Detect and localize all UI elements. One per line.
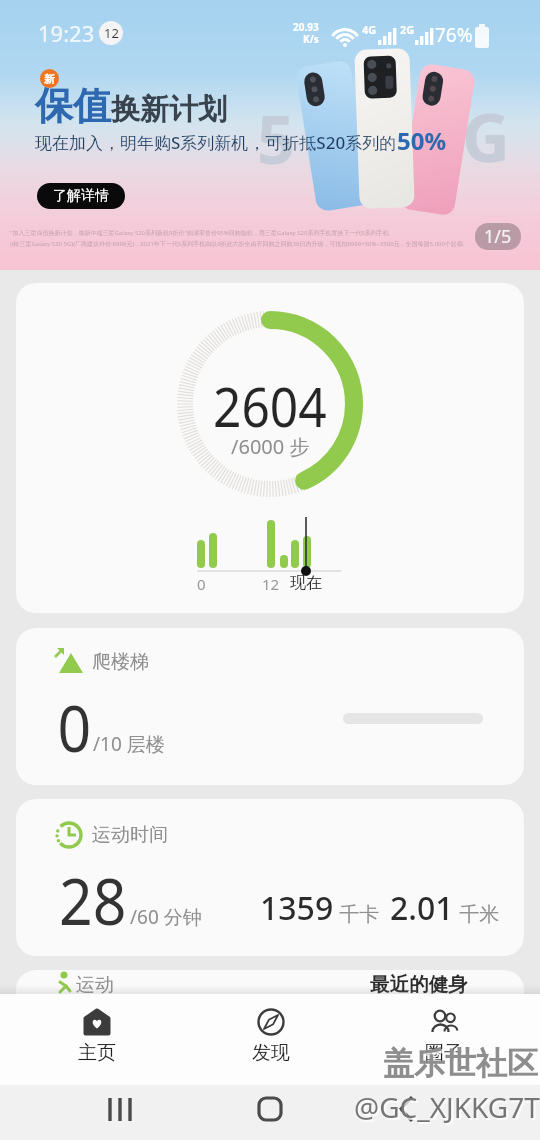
staticText: 19:23 xyxy=(38,18,95,48)
staticText: 50% xyxy=(397,124,447,157)
staticText: 12 xyxy=(262,574,280,594)
staticText: G xyxy=(462,91,510,181)
staticText: 盖乐世社区 xyxy=(383,1044,538,1083)
staticText: 最近的健身 xyxy=(370,972,468,997)
staticText: 76% xyxy=(435,22,473,48)
button[interactable]: 运动时间 xyxy=(16,799,524,956)
staticText: 现在 xyxy=(290,573,322,593)
staticText: 0 xyxy=(57,684,91,771)
staticText: 运动 xyxy=(76,973,114,997)
staticText: 2G xyxy=(400,22,415,37)
staticText: K/s xyxy=(303,32,319,46)
staticText: 发现 xyxy=(252,1041,290,1065)
staticText: 2604 xyxy=(213,369,327,443)
staticText: 1359 xyxy=(260,886,334,930)
staticText: 现在加入，明年购S系列新机，可折抵S20系列的 xyxy=(35,131,397,154)
staticText: /6000 步 xyxy=(231,433,310,460)
button[interactable]: 主页 xyxy=(10,994,184,1085)
button[interactable]: 爬楼梯 xyxy=(16,628,524,785)
staticText: 4G xyxy=(362,22,377,37)
button[interactable]: 2604 xyxy=(16,283,524,613)
staticText: @GC_XJKKG7T xyxy=(356,1090,540,1128)
staticText: 28 xyxy=(59,857,127,944)
staticText: 主页 xyxy=(78,1041,116,1065)
staticText: "加入三星保值换新计划，最新中端三星Galaxy S20系列新机9折价"购满零售… xyxy=(10,229,391,237)
staticText: 1/5 xyxy=(484,224,512,249)
staticText: 2.01 xyxy=(390,886,454,930)
staticText: 0 xyxy=(197,574,206,594)
button[interactable]: 圈子 xyxy=(357,994,530,1085)
staticText: 5 xyxy=(257,93,295,183)
staticText: 千米 xyxy=(454,900,500,927)
staticText: 换新计划 xyxy=(111,91,227,128)
staticText: 千卡 xyxy=(334,900,390,927)
staticText: 20.93 xyxy=(293,20,319,34)
staticText: /60 分钟 xyxy=(130,904,202,930)
staticText: (例:三星Galaxy S20 5G)(厂商建议外价:6999元)，2021年下… xyxy=(10,240,465,248)
staticText: 爬楼梯 xyxy=(92,650,149,674)
staticText: 12 xyxy=(104,24,119,42)
staticText: @GC_XJKKG7T xyxy=(354,1088,540,1126)
staticText: 圈子 xyxy=(425,1041,463,1065)
staticText: 运动时间 xyxy=(92,823,168,847)
staticText: /10 层楼 xyxy=(93,731,165,757)
button[interactable]: 了解详情 xyxy=(37,183,125,209)
button[interactable]: 发现 xyxy=(184,994,357,1085)
staticText: 了解详情 xyxy=(53,187,109,205)
staticText: 盖乐世社区 xyxy=(385,1046,540,1085)
staticText: 新 xyxy=(44,72,55,86)
staticText: 保值 xyxy=(35,82,111,130)
